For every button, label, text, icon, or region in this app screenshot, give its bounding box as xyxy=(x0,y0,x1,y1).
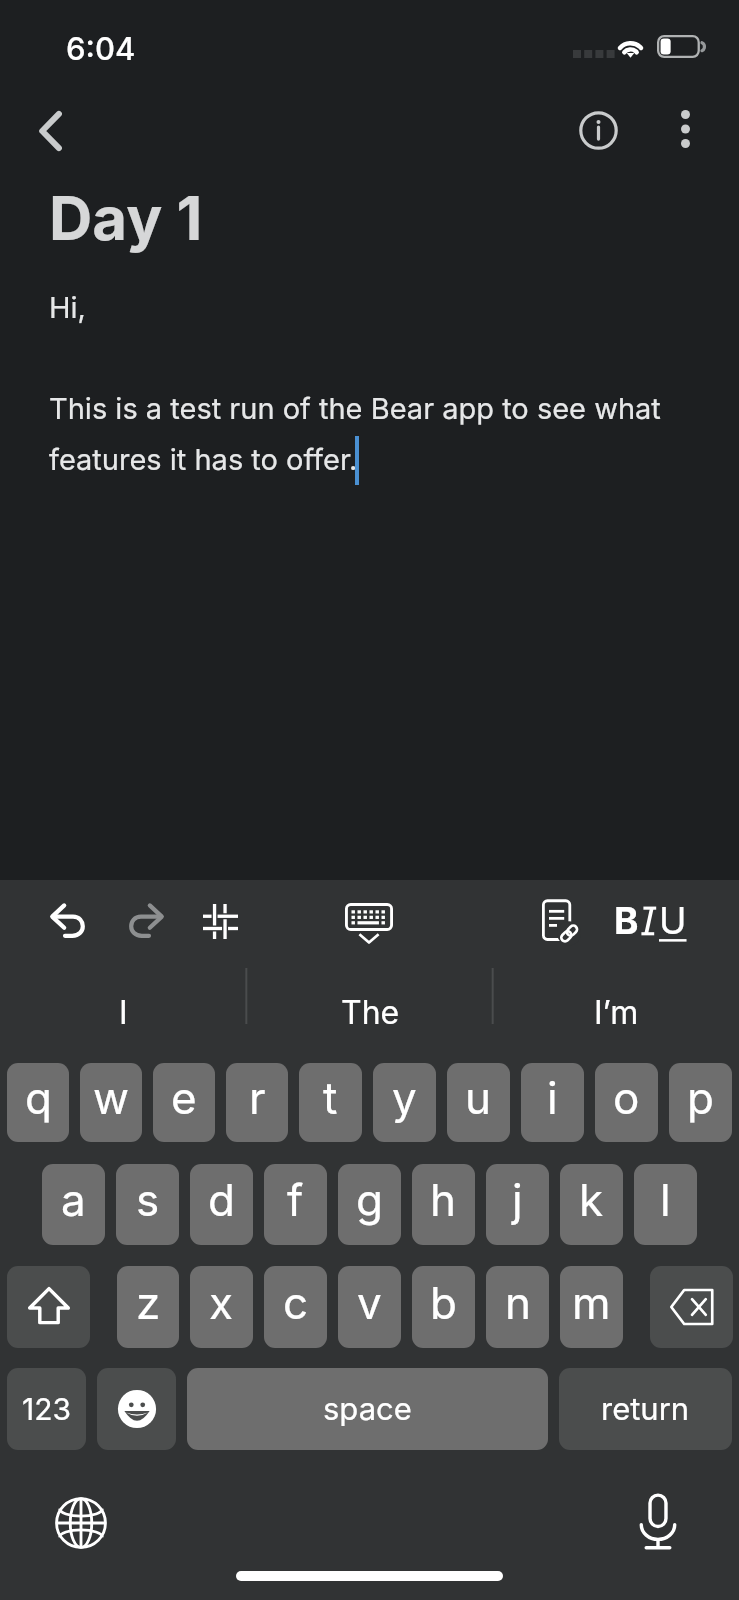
staticText: r xyxy=(249,1071,266,1124)
button[interactable]: z xyxy=(117,1266,179,1348)
button[interactable]: t xyxy=(299,1063,362,1142)
button[interactable]: h xyxy=(412,1164,475,1245)
button[interactable]: Redo xyxy=(116,892,174,950)
button[interactable]: p xyxy=(669,1063,732,1142)
staticText: c xyxy=(283,1276,309,1329)
staticText: t xyxy=(323,1071,338,1124)
staticText: q xyxy=(25,1071,52,1124)
staticText: l xyxy=(660,1173,671,1226)
button[interactable]: x xyxy=(190,1266,253,1348)
button[interactable]: s xyxy=(116,1164,179,1245)
staticText: v xyxy=(357,1276,382,1329)
staticText: e xyxy=(171,1071,197,1124)
button[interactable]: space xyxy=(187,1368,548,1450)
button[interactable]: Link note xyxy=(532,892,590,950)
button[interactable]: Dictate xyxy=(628,1492,688,1552)
button[interactable]: More options xyxy=(656,100,714,158)
button[interactable]: l xyxy=(634,1164,697,1245)
staticText: I xyxy=(119,993,128,1032)
staticText: z xyxy=(136,1276,161,1329)
staticText: B xyxy=(614,898,639,943)
button[interactable]: return xyxy=(559,1368,732,1450)
button[interactable]: v xyxy=(338,1266,401,1348)
button[interactable]: q xyxy=(7,1063,69,1142)
staticText: m xyxy=(572,1276,611,1329)
button[interactable]: Formatting options xyxy=(191,892,249,950)
staticText: s xyxy=(136,1173,160,1226)
staticText: k xyxy=(579,1173,604,1226)
staticText: b xyxy=(430,1276,457,1329)
staticText: The xyxy=(341,993,400,1032)
staticText: a xyxy=(61,1173,86,1226)
staticText: I’m xyxy=(594,993,639,1032)
button[interactable]: w xyxy=(80,1063,142,1142)
staticText: g xyxy=(356,1173,383,1226)
staticText: return xyxy=(601,1390,690,1428)
staticText: 6:04 xyxy=(66,30,136,68)
button[interactable]: Undo xyxy=(40,892,98,950)
staticText: y xyxy=(392,1071,417,1124)
staticText: n xyxy=(505,1276,531,1329)
staticText: space xyxy=(323,1390,412,1428)
staticText: x xyxy=(209,1276,234,1329)
staticText: o xyxy=(613,1071,640,1124)
button[interactable]: e xyxy=(153,1063,215,1142)
button[interactable]: d xyxy=(190,1164,253,1245)
button[interactable]: y xyxy=(373,1063,436,1142)
button[interactable]: j xyxy=(486,1164,549,1245)
button[interactable]: u xyxy=(447,1063,510,1142)
button[interactable]: I xyxy=(0,964,247,1044)
staticText: 123 xyxy=(22,1391,72,1427)
button[interactable]: Bold italic underline xyxy=(603,888,698,952)
button[interactable]: Backspace xyxy=(650,1266,733,1348)
staticText: i xyxy=(547,1071,558,1124)
button[interactable]: Hide keyboard xyxy=(340,894,398,952)
button[interactable]: Back xyxy=(22,102,80,160)
button[interactable]: o xyxy=(595,1063,658,1142)
button[interactable]: r xyxy=(226,1063,288,1142)
button[interactable]: b xyxy=(412,1266,475,1348)
button[interactable]: n xyxy=(486,1266,549,1348)
staticText: f xyxy=(287,1173,304,1226)
button[interactable]: k xyxy=(560,1164,623,1245)
button[interactable]: g xyxy=(338,1164,401,1245)
staticText: p xyxy=(687,1071,714,1124)
button[interactable]: Shift xyxy=(7,1266,90,1348)
button[interactable]: c xyxy=(264,1266,327,1348)
staticText: j xyxy=(512,1173,523,1226)
staticText: u xyxy=(465,1071,492,1124)
button[interactable]: m xyxy=(560,1266,623,1348)
staticText: Hi, xyxy=(49,290,86,325)
staticText: This is a test run of the Bear app to se… xyxy=(49,391,674,477)
staticText: d xyxy=(208,1173,235,1226)
button[interactable]: 123 xyxy=(7,1368,86,1450)
button[interactable]: a xyxy=(42,1164,105,1245)
staticText: h xyxy=(430,1173,457,1226)
staticText: w xyxy=(93,1071,130,1124)
button[interactable]: i xyxy=(521,1063,584,1142)
button[interactable]: f xyxy=(264,1164,327,1245)
button[interactable]: Emoji xyxy=(97,1368,176,1450)
button[interactable]: Info xyxy=(569,101,627,159)
staticText: U xyxy=(659,898,687,943)
button[interactable]: The xyxy=(247,964,493,1044)
staticText: Day 1 xyxy=(49,182,203,255)
button[interactable]: I’m xyxy=(493,964,739,1044)
button[interactable]: Change keyboard language xyxy=(51,1493,111,1553)
